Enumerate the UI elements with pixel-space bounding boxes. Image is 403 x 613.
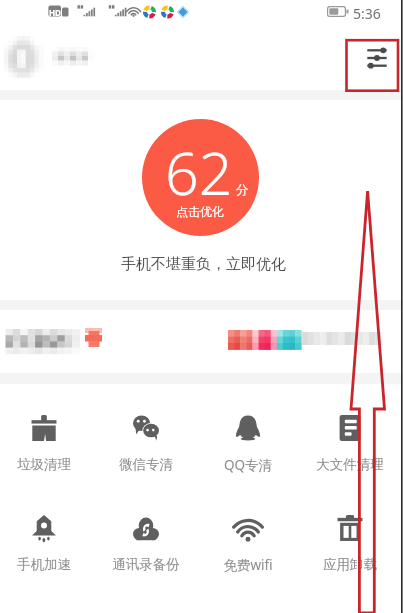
- button[interactable]: 手机加速: [0, 500, 95, 588]
- button[interactable]: 62: [142, 119, 259, 236]
- staticText: 应用卸载: [300, 556, 400, 573]
- button[interactable]: Settings: [356, 38, 398, 78]
- staticText: 手机不堪重负，立即优化: [121, 255, 286, 274]
- staticText: 分: [236, 182, 249, 198]
- staticText: 通讯录备份: [96, 556, 196, 573]
- staticText: 点击优化: [176, 204, 224, 219]
- staticText: 垃圾清理: [0, 456, 94, 473]
- button[interactable]: 垃圾清理: [0, 400, 95, 488]
- staticText: 5:36: [353, 4, 381, 23]
- staticText: 大文件清理: [300, 456, 400, 473]
- button[interactable]: 微信专清: [95, 400, 197, 488]
- staticText: 免费wifi: [198, 556, 298, 574]
- staticText: 微信专清: [96, 456, 196, 473]
- button[interactable]: 免费wifi: [197, 500, 299, 588]
- staticText: QQ专清: [198, 456, 298, 474]
- button[interactable]: 大文件清理: [299, 400, 401, 488]
- button[interactable]: 应用卸载: [299, 500, 401, 588]
- button[interactable]: QQ专清: [197, 400, 299, 488]
- staticText: 手机加速: [0, 556, 94, 573]
- staticText: HD: [49, 7, 61, 18]
- button[interactable]: 通讯录备份: [95, 500, 197, 588]
- staticText: 62: [165, 132, 233, 212]
